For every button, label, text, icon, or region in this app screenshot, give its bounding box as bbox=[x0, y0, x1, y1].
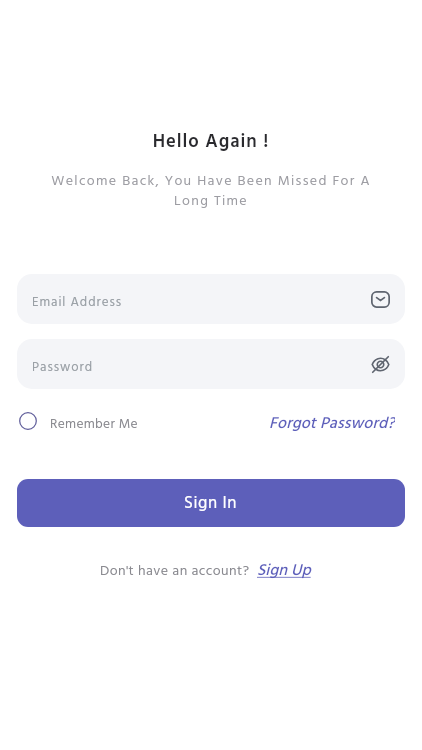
button[interactable]: Email Address bbox=[17, 274, 405, 324]
staticText: Don't have an account? bbox=[100, 560, 250, 582]
button[interactable]: Remember Me bbox=[17, 411, 138, 431]
staticText: Sign In bbox=[184, 490, 238, 517]
button[interactable]: Show password bbox=[367, 351, 393, 377]
staticText: Hello Again ! bbox=[17, 127, 405, 157]
button[interactable]: Forgot Password? bbox=[269, 411, 405, 431]
staticText: Welcome Back, You Have Been Missed For A… bbox=[37, 170, 385, 213]
button[interactable]: Sign In bbox=[17, 479, 405, 527]
button[interactable]: Password bbox=[17, 339, 405, 389]
staticText: Remember Me bbox=[50, 414, 138, 431]
staticText: Email Address bbox=[32, 292, 123, 313]
button[interactable]: Sign Up bbox=[257, 558, 311, 584]
staticText: Password bbox=[32, 357, 94, 378]
other: Email bbox=[367, 286, 393, 312]
